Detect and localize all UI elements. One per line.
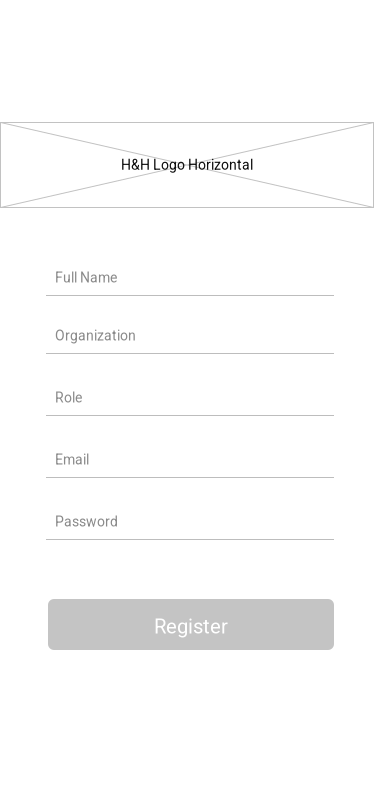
staticText: Full Name [55,270,117,286]
staticText: H&H Logo Horizontal [121,157,253,173]
button[interactable]: Register [48,599,334,650]
staticText: Email [55,452,89,468]
button[interactable]: Organization [46,318,334,354]
button[interactable]: Password [46,504,334,540]
staticText: Role [55,390,82,406]
button[interactable]: Role [46,380,334,416]
staticText: Register [154,615,228,638]
button[interactable]: Full Name [46,260,334,296]
staticText: Password [55,514,118,530]
button[interactable]: Email [46,442,334,478]
staticText: Organization [55,328,136,344]
